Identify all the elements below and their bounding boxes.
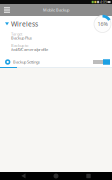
button[interactable]: Backup Settings [0, 57, 43, 67]
staticText: Mobile Backup [43, 7, 69, 13]
button[interactable]: Backup toggle [93, 57, 112, 67]
button[interactable]: Recent apps [79, 172, 97, 180]
button[interactable]: Back [14, 172, 32, 180]
staticText: Wireless [11, 20, 38, 28]
staticText: /vol/0/Camera/profile [11, 47, 48, 52]
staticText: Target [11, 31, 22, 37]
button[interactable]: Home [47, 172, 65, 180]
staticText: Backup Plus [11, 35, 32, 41]
staticText: 16% [97, 20, 107, 28]
staticText: Backup Settings [13, 59, 40, 65]
staticText: 4:09 [100, 0, 107, 5]
staticText: Backup to [11, 43, 28, 48]
button[interactable]: Wireless [0, 16, 41, 31]
button[interactable]: Menu [0, 4, 14, 16]
